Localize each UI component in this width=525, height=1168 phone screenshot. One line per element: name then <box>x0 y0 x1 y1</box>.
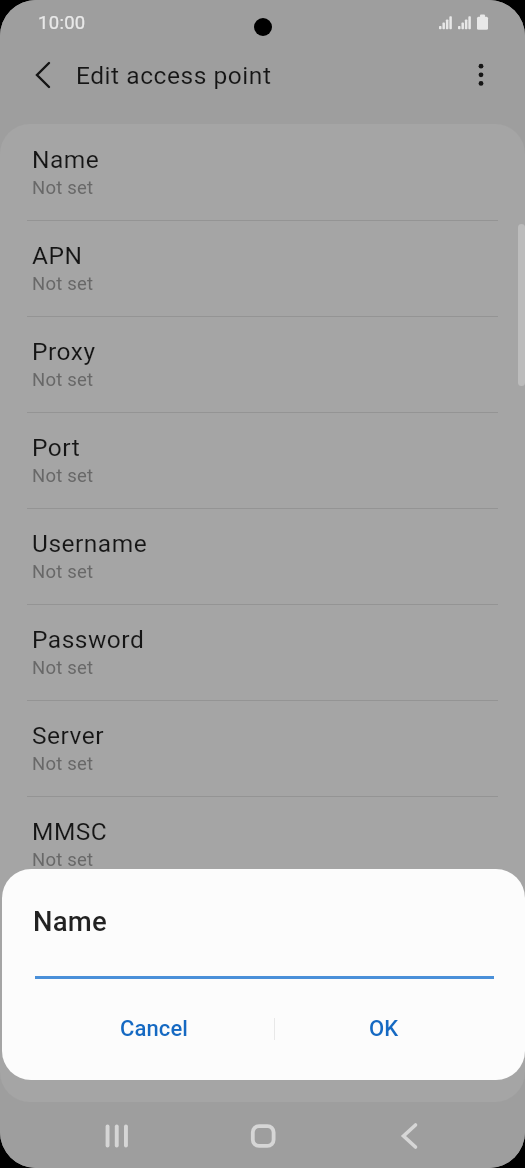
staticText: Not set <box>32 753 94 775</box>
button[interactable]: Navigate up <box>19 51 67 99</box>
staticText: MMSC <box>32 817 108 846</box>
staticText: 10:00 <box>38 12 86 34</box>
button[interactable]: Name <box>0 124 525 220</box>
staticText: Not set <box>32 177 94 199</box>
staticText: Name <box>33 905 107 937</box>
staticText: Server <box>32 721 105 750</box>
staticText: Edit access point <box>76 61 272 90</box>
button[interactable]: Cancel <box>60 1002 248 1056</box>
button[interactable]: MMS port <box>0 988 525 1084</box>
button[interactable]: OK <box>290 1002 478 1056</box>
button[interactable]: Server <box>0 700 525 796</box>
staticText: MMS proxy <box>32 913 160 942</box>
staticText: Name <box>32 145 100 174</box>
button[interactable]: APN <box>0 220 525 316</box>
staticText: OK <box>369 1016 399 1042</box>
staticText: Cancel <box>120 1016 189 1042</box>
staticText: Not set <box>32 657 94 679</box>
staticText: Not set <box>32 849 94 871</box>
button[interactable]: Port <box>0 412 525 508</box>
staticText: APN <box>32 241 83 270</box>
staticText: Port <box>32 433 81 462</box>
staticText: MMS port <box>32 1009 145 1038</box>
staticText: Not set <box>32 561 94 583</box>
button[interactable]: MMSC <box>0 796 525 892</box>
staticText: Password <box>32 625 145 654</box>
staticText: Proxy <box>32 337 96 366</box>
staticText: Not set <box>32 369 94 391</box>
button[interactable]: Proxy <box>0 316 525 412</box>
button[interactable]: More options <box>457 51 505 99</box>
staticText: Not set <box>32 273 94 295</box>
button[interactable]: Password <box>0 604 525 700</box>
staticText: Username <box>32 529 148 558</box>
staticText: Not set <box>32 465 94 487</box>
button[interactable]: MMS proxy <box>0 892 525 988</box>
button[interactable]: Username <box>0 508 525 604</box>
